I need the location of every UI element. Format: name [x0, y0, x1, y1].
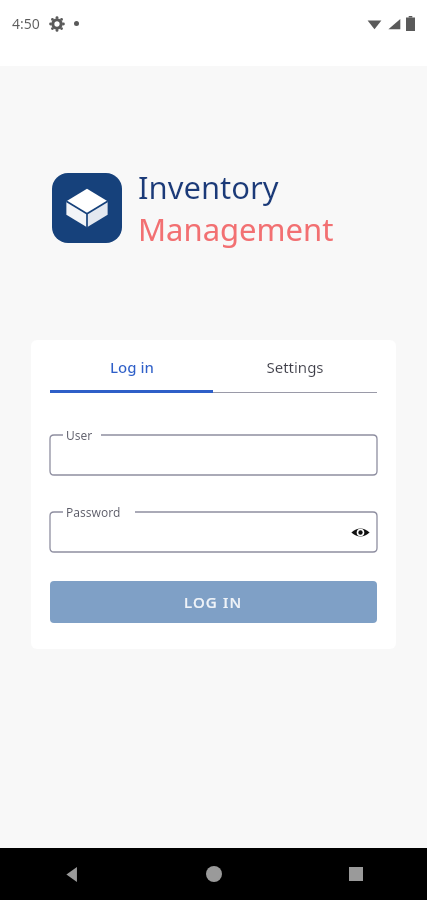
staticText: LOG IN	[184, 592, 243, 612]
staticText: Password	[66, 504, 121, 520]
button[interactable]: Back	[0, 848, 143, 900]
staticText: Settings	[266, 357, 324, 377]
button[interactable]: LOG IN	[50, 581, 377, 623]
button[interactable]: Show password	[343, 515, 377, 549]
staticText: Inventory	[138, 166, 279, 208]
staticText: Log in	[110, 357, 154, 377]
staticText: 4:50	[12, 14, 40, 33]
staticText: Management	[138, 208, 334, 250]
button[interactable]: Home	[143, 848, 285, 900]
button[interactable]: Recent apps	[285, 848, 427, 900]
button[interactable]: Log in	[50, 352, 213, 382]
button[interactable]: Settings	[213, 352, 377, 382]
staticText: User	[66, 427, 93, 443]
